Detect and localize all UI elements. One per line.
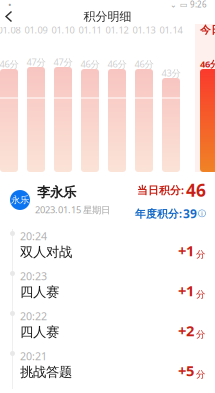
staticText: 01.08 — [0, 24, 20, 36]
staticText: 46 — [186, 178, 206, 201]
staticText: 20:21 — [20, 349, 47, 363]
button[interactable]: Back — [0, 9, 18, 24]
staticText: 01.11 — [78, 24, 101, 36]
staticText: 李永乐 — [37, 184, 76, 200]
staticText: 当日积分: — [137, 183, 184, 197]
staticText: 46分 — [80, 58, 99, 70]
staticText: 四人赛 — [20, 284, 59, 300]
staticText: +5 — [178, 361, 194, 380]
staticText: +1 — [178, 241, 194, 260]
staticText: • — [8, 0, 12, 11]
staticText: 分 — [196, 249, 205, 260]
staticText: 分 — [196, 289, 205, 300]
staticText: 2023.01.15 星期日 — [35, 203, 110, 216]
staticText: 四人赛 — [20, 324, 59, 340]
staticText: 01.14 — [159, 24, 182, 36]
staticText: 43分 — [161, 67, 180, 79]
staticText: 39 — [183, 205, 197, 221]
staticText: ⓘ — [198, 209, 206, 218]
staticText: 46分 — [0, 58, 18, 70]
staticText: 年度积分: — [135, 206, 182, 221]
button[interactable]: 20:22 — [0, 309, 215, 349]
staticText: 双人对战 — [20, 244, 72, 260]
staticText: 永乐 — [11, 194, 29, 206]
button[interactable]: 20:21 — [0, 349, 215, 389]
button[interactable]: 20:24 — [0, 229, 215, 269]
staticText: +2 — [178, 321, 194, 340]
staticText: 46分 — [107, 58, 126, 70]
staticText: 分 — [196, 329, 205, 340]
staticText: 46分 — [200, 58, 215, 70]
staticText: +1 — [178, 281, 194, 300]
staticText: 47分 — [53, 56, 72, 68]
staticText: 分 — [196, 369, 205, 380]
staticText: 积分明细 — [83, 9, 131, 24]
staticText: ⌄ ▭ 9:26 — [170, 0, 207, 10]
staticText: 20:24 — [20, 229, 47, 243]
staticText: 46分 — [134, 58, 153, 70]
staticText: 20:23 — [20, 269, 47, 283]
staticText: 47分 — [26, 56, 45, 68]
staticText: 01.09 — [24, 24, 47, 36]
button[interactable]: 20:23 — [0, 269, 215, 309]
staticText: 01.10 — [51, 24, 74, 36]
staticText: 今日 — [200, 23, 215, 36]
staticText: 挑战答题 — [20, 364, 72, 380]
staticText: 01.12 — [105, 24, 128, 36]
staticText: 01.13 — [132, 24, 155, 36]
staticText: 20:22 — [20, 309, 47, 323]
